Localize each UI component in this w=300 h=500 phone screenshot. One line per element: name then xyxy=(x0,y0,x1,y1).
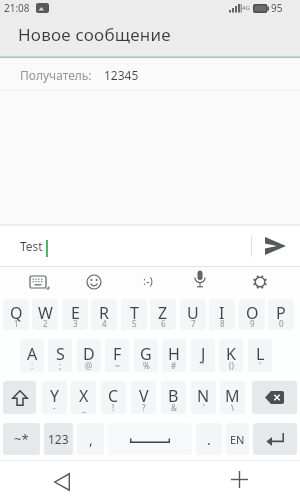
staticText: " xyxy=(201,360,205,371)
button[interactable]: I xyxy=(209,299,235,330)
button[interactable]: A xyxy=(20,339,44,372)
button[interactable]: 123 xyxy=(44,423,73,455)
staticText: ' xyxy=(203,402,205,413)
staticText: 7 xyxy=(191,318,196,329)
staticText: Получатель: xyxy=(20,67,92,83)
staticText: C xyxy=(108,385,119,407)
staticText: N xyxy=(197,385,210,407)
button[interactable] xyxy=(252,226,300,266)
staticText: E xyxy=(71,302,80,324)
button[interactable]: H xyxy=(162,339,186,372)
staticText: Новое сообщение xyxy=(18,23,171,46)
button[interactable]: F xyxy=(105,339,129,372)
staticText: 1 xyxy=(14,318,19,329)
staticText: G xyxy=(140,343,152,365)
staticText: ~ xyxy=(115,360,120,371)
staticText: ~* xyxy=(14,430,29,448)
staticText: ; xyxy=(59,360,62,371)
button[interactable] xyxy=(3,381,36,414)
staticText: 21:08 xyxy=(4,1,30,15)
button[interactable]: . xyxy=(196,423,222,455)
staticText: \ xyxy=(231,402,234,413)
button[interactable]: P xyxy=(268,299,294,330)
button[interactable] xyxy=(86,274,102,290)
staticText: 3 xyxy=(73,318,78,329)
button[interactable]: V xyxy=(131,381,156,414)
button[interactable]: M xyxy=(220,381,245,414)
staticText: . xyxy=(207,430,211,449)
staticText: U xyxy=(187,302,199,324)
button[interactable]: E xyxy=(62,299,88,330)
button[interactable] xyxy=(251,273,269,291)
button[interactable]: Y xyxy=(42,381,67,414)
staticText: F xyxy=(113,343,122,365)
staticText: Q xyxy=(10,302,23,324)
staticText: I xyxy=(219,302,225,324)
button[interactable]: Получатель: xyxy=(0,58,300,90)
button[interactable] xyxy=(252,381,297,414)
staticText: X xyxy=(79,385,89,407)
staticText: 5 xyxy=(132,318,137,329)
button[interactable] xyxy=(28,274,52,293)
button[interactable] xyxy=(226,466,252,492)
button[interactable]: EN xyxy=(226,423,249,455)
button[interactable]: N xyxy=(191,381,216,414)
button[interactable]: X xyxy=(71,381,96,414)
staticText: EN xyxy=(230,432,245,447)
button[interactable]: ~* xyxy=(3,423,40,455)
button[interactable] xyxy=(253,423,297,455)
staticText: V xyxy=(139,385,149,407)
staticText: 12345 xyxy=(104,67,139,83)
button[interactable]: R xyxy=(91,299,117,330)
staticText: , xyxy=(89,430,93,449)
staticText: H xyxy=(168,343,180,365)
staticText: # xyxy=(171,360,177,371)
staticText: B xyxy=(168,385,179,407)
button[interactable] xyxy=(108,423,192,455)
staticText: % xyxy=(143,360,150,371)
button[interactable]: :-) xyxy=(136,271,160,289)
staticText: A xyxy=(27,343,38,365)
staticText: 8 xyxy=(220,318,225,329)
button[interactable]: D xyxy=(77,339,101,372)
staticText: _ xyxy=(82,402,86,413)
staticText: D xyxy=(83,343,95,365)
staticText: L xyxy=(256,343,265,365)
button[interactable]: L xyxy=(248,339,272,372)
staticText: 2 xyxy=(43,318,48,329)
staticText: O xyxy=(246,302,259,324)
staticText: Test xyxy=(20,238,43,254)
staticText: ' xyxy=(259,360,261,371)
staticText: () xyxy=(229,360,234,371)
button[interactable]: Z xyxy=(150,299,176,330)
button[interactable]: B xyxy=(161,381,186,414)
staticText: P xyxy=(276,302,286,324)
button[interactable]: U xyxy=(180,299,206,330)
staticText: 9 xyxy=(250,318,255,329)
button[interactable]: G xyxy=(134,339,158,372)
staticText: J xyxy=(201,343,206,365)
staticText: R xyxy=(99,302,109,324)
staticText: 4G xyxy=(242,4,250,12)
staticText: - xyxy=(53,402,56,413)
button[interactable]: K xyxy=(219,339,243,372)
staticText: 0 xyxy=(279,318,284,329)
button[interactable]: J xyxy=(191,339,215,372)
button[interactable]: Q xyxy=(3,299,29,330)
button[interactable]: W xyxy=(32,299,58,330)
staticText: K xyxy=(226,343,236,365)
button[interactable] xyxy=(48,468,76,496)
button[interactable]: , xyxy=(77,423,104,455)
staticText: ! xyxy=(112,402,115,413)
staticText: M xyxy=(225,385,240,407)
staticText: :-) xyxy=(143,273,153,288)
staticText: : xyxy=(31,360,34,371)
button[interactable]: C xyxy=(101,381,126,414)
button[interactable]: O xyxy=(239,299,265,330)
staticText: 123 xyxy=(48,431,69,447)
staticText: & xyxy=(171,402,177,413)
button[interactable]: T xyxy=(121,299,147,330)
button[interactable] xyxy=(192,270,208,290)
staticText: Y xyxy=(50,385,60,407)
button[interactable]: S xyxy=(48,339,72,372)
